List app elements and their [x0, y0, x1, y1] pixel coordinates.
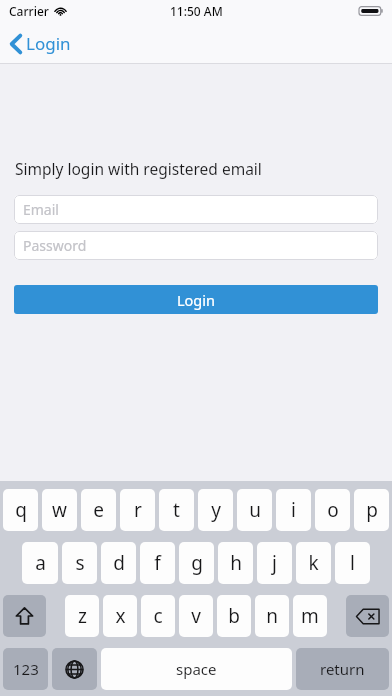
staticText: l	[350, 550, 355, 576]
staticText: a	[35, 550, 46, 576]
staticText: i	[291, 497, 296, 523]
button[interactable]: z	[65, 595, 99, 637]
staticText: j	[272, 550, 277, 576]
staticText: Email	[23, 200, 59, 219]
button[interactable]: w	[42, 489, 77, 531]
button[interactable]: v	[179, 595, 213, 637]
staticText: y	[211, 497, 221, 523]
button[interactable]: h	[218, 542, 253, 584]
button[interactable]: Shift	[3, 595, 46, 637]
staticText: Login	[177, 290, 215, 310]
staticText: d	[113, 550, 125, 576]
staticText: v	[191, 603, 201, 629]
staticText: space	[176, 659, 217, 679]
button[interactable]: Backspace	[346, 595, 389, 637]
button[interactable]: y	[198, 489, 233, 531]
button[interactable]: Login	[0, 27, 85, 60]
button[interactable]: Change keyboard language	[52, 648, 97, 690]
staticText: return	[320, 659, 365, 679]
button[interactable]: Email	[14, 195, 378, 224]
staticText: c	[153, 603, 163, 629]
button[interactable]: 123	[3, 648, 48, 690]
button[interactable]: d	[101, 542, 136, 584]
button[interactable]: g	[179, 542, 214, 584]
button[interactable]: a	[22, 542, 58, 584]
button[interactable]: s	[62, 542, 97, 584]
staticText: q	[15, 497, 27, 523]
button[interactable]: b	[217, 595, 251, 637]
button[interactable]: n	[255, 595, 289, 637]
staticText: k	[308, 550, 319, 576]
staticText: e	[93, 497, 104, 523]
staticText: o	[327, 497, 339, 523]
staticText: u	[249, 497, 261, 523]
staticText: s	[75, 550, 85, 576]
staticText: 123	[13, 659, 39, 679]
staticText: m	[301, 603, 319, 629]
button[interactable]: f	[140, 542, 175, 584]
button[interactable]: k	[296, 542, 331, 584]
button[interactable]: e	[81, 489, 116, 531]
staticText: t	[173, 497, 180, 523]
staticText: n	[266, 603, 278, 629]
button[interactable]: j	[257, 542, 292, 584]
button[interactable]: Login	[14, 285, 378, 314]
staticText: z	[78, 603, 87, 629]
staticText: Carrier	[9, 3, 49, 19]
button[interactable]: Password	[14, 231, 378, 260]
staticText: g	[191, 550, 203, 576]
button[interactable]: i	[276, 489, 311, 531]
button[interactable]: o	[315, 489, 350, 531]
button[interactable]: c	[141, 595, 175, 637]
staticText: f	[154, 550, 161, 576]
button[interactable]: m	[293, 595, 327, 637]
staticText: p	[366, 497, 378, 523]
staticText: h	[230, 550, 242, 576]
button[interactable]: r	[120, 489, 155, 531]
staticText: w	[52, 497, 67, 523]
staticText: b	[228, 603, 240, 629]
staticText: Login	[26, 32, 71, 55]
button[interactable]: t	[159, 489, 194, 531]
staticText: r	[134, 497, 142, 523]
staticText: 11:50 AM	[170, 3, 223, 19]
staticText: Simply login with registered email	[15, 158, 262, 179]
button[interactable]: u	[237, 489, 272, 531]
button[interactable]: l	[335, 542, 370, 584]
button[interactable]: q	[3, 489, 38, 531]
button[interactable]: return	[296, 648, 389, 690]
staticText: Password	[23, 236, 87, 255]
button[interactable]: p	[354, 489, 389, 531]
button[interactable]: x	[103, 595, 137, 637]
staticText: x	[115, 603, 126, 629]
button[interactable]: space	[101, 648, 292, 690]
